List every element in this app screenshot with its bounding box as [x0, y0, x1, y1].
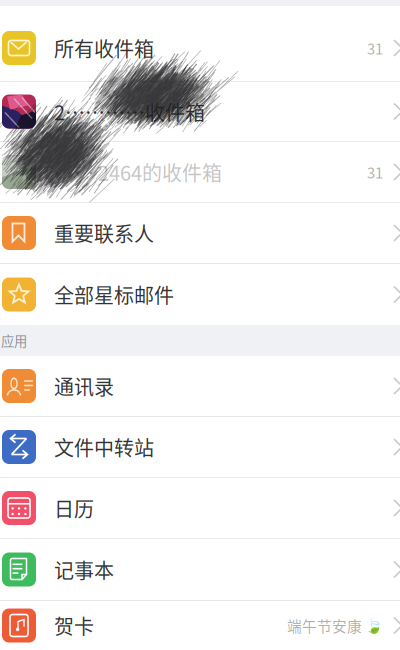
staticText: 重要联系人: [54, 218, 154, 247]
button[interactable]: 所有收件箱: [0, 6, 400, 81]
staticText: 端午节安康 🍃: [287, 615, 383, 636]
staticText: 文件中转站: [54, 432, 154, 461]
staticText: …… 2464的收件箱: [54, 157, 222, 186]
button[interactable]: 贺卡: [0, 601, 400, 650]
staticText: 2…………收件箱: [54, 97, 205, 126]
staticText: 31: [367, 161, 383, 183]
staticText: 日历: [54, 493, 94, 522]
button[interactable]: 通讯录: [0, 356, 400, 416]
button[interactable]: 日历: [0, 478, 400, 538]
staticText: 全部星标邮件: [54, 280, 174, 309]
button[interactable]: 全部星标邮件: [0, 264, 400, 325]
button[interactable]: …… 2464的收件箱: [0, 142, 400, 202]
staticText: 应用: [1, 331, 27, 350]
staticText: 31: [367, 37, 383, 59]
button[interactable]: 记事本: [0, 539, 400, 600]
button[interactable]: 2…………收件箱: [0, 82, 400, 141]
button[interactable]: 重要联系人: [0, 203, 400, 263]
button[interactable]: 文件中转站: [0, 417, 400, 477]
staticText: 所有收件箱: [54, 33, 154, 62]
staticText: 贺卡: [54, 611, 94, 640]
staticText: 通讯录: [54, 371, 114, 400]
staticText: 记事本: [54, 555, 114, 584]
